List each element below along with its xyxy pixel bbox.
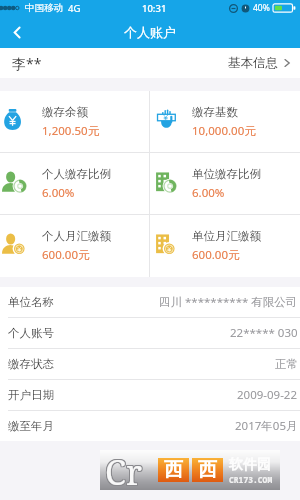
button[interactable]: 单位缴存比例 [150, 153, 300, 214]
staticText: 西 [164, 458, 183, 482]
staticText: 个人账户 [124, 24, 176, 40]
button[interactable]: 缴存余额 [0, 91, 149, 152]
button[interactable]: 单位名称 [0, 287, 300, 317]
staticText: 中国移动 [25, 2, 63, 14]
button[interactable]: 单位月汇缴额 [150, 215, 300, 277]
staticText: Cr [106, 449, 143, 489]
staticText: Cr [106, 450, 143, 490]
staticText: 李** [12, 54, 42, 73]
staticText: Cr [104, 449, 141, 489]
staticText: 缴存状态 [8, 357, 54, 371]
staticText: 22***** 030 [230, 325, 298, 341]
staticText: 单位月汇缴额 [192, 229, 261, 243]
button[interactable]: 缴存状态 [0, 349, 300, 379]
button[interactable]: Back [0, 16, 34, 48]
staticText: 缴至年月 [8, 419, 54, 433]
staticText: 西 [198, 458, 217, 482]
staticText: Cr [104, 450, 141, 490]
staticText: 开户日期 [8, 388, 54, 402]
staticText: Cr [106, 448, 143, 488]
staticText: Cr [105, 448, 142, 488]
button[interactable]: 个人月汇缴额 [0, 215, 149, 277]
staticText: 6.00% [42, 185, 75, 201]
button[interactable]: 个人账号 [0, 318, 300, 348]
staticText: 个人月汇缴额 [42, 229, 111, 243]
staticText: 1,200.50元 [42, 123, 100, 139]
staticText: 600.00元 [42, 247, 90, 263]
staticText: 单位缴存比例 [192, 167, 261, 181]
staticText: 2009-09-22 [237, 387, 298, 403]
staticText: 正常 [275, 357, 298, 371]
staticText: 软件园 [229, 456, 271, 474]
staticText: 40% [253, 2, 270, 14]
staticText: 600.00元 [192, 247, 240, 263]
button[interactable]: 缴至年月 [0, 411, 300, 441]
button[interactable]: 李** [0, 48, 300, 78]
staticText: Cr [105, 449, 142, 489]
staticText: Cr [105, 450, 142, 490]
staticText: 四川 ********** 有限公司 [159, 294, 298, 310]
staticText: 基本信息 [228, 55, 278, 71]
staticText: 缴存基数 [192, 105, 238, 119]
button[interactable]: 个人缴存比例 [0, 153, 149, 214]
staticText: 10:31 [142, 2, 167, 15]
staticText: 缴存余额 [42, 105, 88, 119]
staticText: 个人账号 [8, 326, 54, 340]
button[interactable]: 开户日期 [0, 380, 300, 410]
staticText: 4G [68, 2, 81, 15]
staticText: Cr [104, 448, 141, 488]
staticText: 个人缴存比例 [42, 167, 111, 181]
button[interactable]: 缴存基数 [150, 91, 300, 152]
staticText: 10,000.00元 [192, 123, 256, 139]
staticText: 单位名称 [8, 295, 54, 309]
staticText: 2017年05月 [235, 418, 298, 434]
staticText: CR173.COM [229, 474, 273, 485]
staticText: 6.00% [192, 185, 225, 201]
